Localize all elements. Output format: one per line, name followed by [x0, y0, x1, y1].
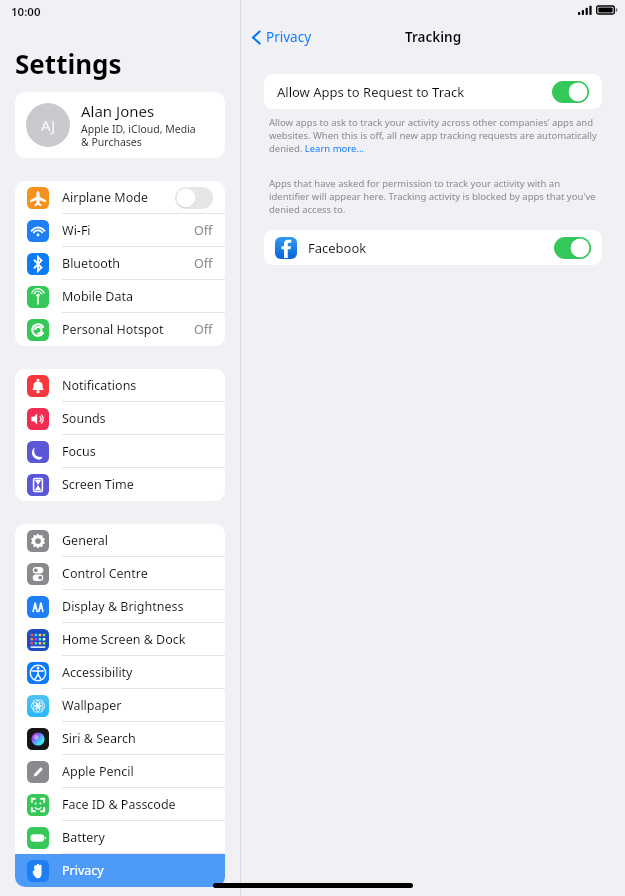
staticText: Settings: [15, 46, 122, 81]
staticText: Control Centre: [62, 565, 213, 582]
staticText: General: [62, 532, 213, 549]
staticText: Notifications: [62, 377, 213, 394]
staticText: Wallpaper: [62, 697, 213, 714]
staticText: Home Screen & Dock: [62, 631, 213, 648]
button[interactable]: Screen Time: [15, 468, 225, 501]
staticText: Screen Time: [62, 476, 213, 493]
button[interactable]: Control Centre: [15, 557, 225, 590]
staticText: Privacy: [266, 28, 312, 46]
staticText: Apple ID, iCloud, Media & Purchases: [81, 122, 196, 149]
staticText: Personal Hotspot: [62, 321, 194, 338]
button[interactable]: Home Screen & Dock: [15, 623, 225, 656]
button[interactable]: Notifications: [15, 369, 225, 402]
staticText: Apple Pencil: [62, 763, 213, 780]
staticText: Off: [194, 255, 213, 272]
staticText: Bluetooth: [62, 255, 194, 272]
staticText: Battery: [62, 829, 213, 846]
staticText: Sounds: [62, 410, 213, 427]
staticText: Airplane Mode: [62, 189, 175, 206]
button[interactable]: Bluetooth: [15, 247, 225, 280]
button[interactable]: Wi-Fi: [15, 214, 225, 247]
staticText: Display & Brightness: [62, 598, 213, 615]
staticText: Wi-Fi: [62, 222, 194, 239]
staticText: Mobile Data: [62, 288, 213, 305]
button[interactable]: Apple Pencil: [15, 755, 225, 788]
button[interactable]: Airplane Mode: [15, 181, 225, 214]
staticText: Tracking: [405, 28, 462, 46]
staticText: Siri & Search: [62, 730, 213, 747]
button[interactable]: Allow Apps to Request to Track: [264, 74, 602, 109]
button[interactable]: Privacy: [249, 26, 315, 48]
button[interactable]: Off: [175, 187, 213, 209]
staticText: Facebook: [308, 239, 554, 257]
button[interactable]: On: [552, 81, 589, 103]
staticText: Alan Jones: [81, 101, 155, 121]
staticText: Off: [194, 321, 213, 338]
button[interactable]: Focus: [15, 435, 225, 468]
button[interactable]: Mobile Data: [15, 280, 225, 313]
button[interactable]: Siri & Search: [15, 722, 225, 755]
staticText: Off: [194, 222, 213, 239]
button[interactable]: On: [554, 237, 591, 259]
staticText: Focus: [62, 443, 213, 460]
staticText: Accessibility: [62, 664, 213, 681]
button[interactable]: Wallpaper: [15, 689, 225, 722]
button[interactable]: AJ: [15, 92, 225, 158]
staticText: Apps that have asked for permission to t…: [269, 177, 597, 216]
staticText: AJ: [41, 115, 56, 135]
button[interactable]: Personal Hotspot: [15, 313, 225, 346]
staticText: Privacy: [62, 862, 213, 879]
button[interactable]: Battery: [15, 821, 225, 854]
staticText: Allow Apps to Request to Track: [277, 83, 552, 101]
button[interactable]: Sounds: [15, 402, 225, 435]
button[interactable]: Accessibility: [15, 656, 225, 689]
staticText: Face ID & Passcode: [62, 796, 213, 813]
button[interactable]: Privacy: [15, 854, 225, 887]
button[interactable]: Facebook: [264, 230, 602, 265]
button[interactable]: Display & Brightness: [15, 590, 225, 623]
staticText: Allow apps to ask to track your activity…: [269, 116, 597, 155]
button[interactable]: Face ID & Passcode: [15, 788, 225, 821]
staticText: 10:00: [11, 4, 41, 20]
button[interactable]: General: [15, 524, 225, 557]
